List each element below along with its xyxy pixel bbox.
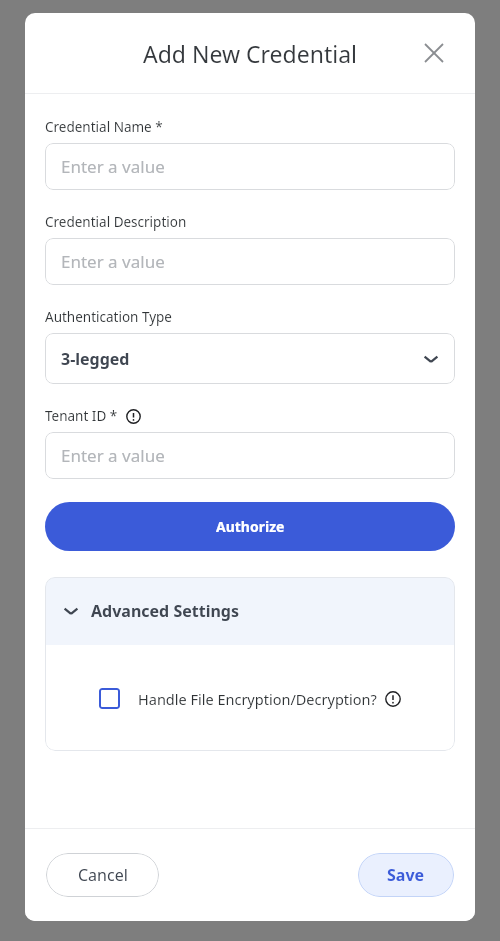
staticText: Credential Description [45, 213, 187, 231]
staticText: Enter a value [61, 250, 165, 273]
button[interactable]: Close [417, 36, 451, 70]
staticText: Add New Credential [143, 38, 357, 69]
staticText: Enter a value [61, 155, 165, 178]
button[interactable]: Enter a value [45, 432, 455, 479]
button[interactable]: Save [358, 853, 454, 897]
button[interactable]: More information [384, 690, 402, 708]
staticText: 3-legged [61, 348, 130, 370]
button[interactable]: More information [124, 407, 142, 425]
staticText: Credential Name * [45, 118, 163, 136]
button[interactable]: Handle File Encryption/Decryption? [95, 684, 406, 713]
staticText: Advanced Settings [91, 600, 239, 622]
staticText: Authentication Type [45, 308, 172, 326]
button[interactable]: 3-legged [45, 333, 455, 384]
staticText: Save [387, 864, 425, 886]
staticText: Handle File Encryption/Decryption? [138, 689, 377, 709]
staticText: Authorize [216, 517, 285, 536]
button[interactable]: Advanced Settings [45, 577, 455, 645]
staticText: Cancel [78, 864, 128, 886]
button[interactable]: Enter a value [45, 143, 455, 190]
button[interactable]: Authorize [45, 502, 455, 551]
staticText: Tenant ID * [45, 407, 118, 425]
button[interactable]: Cancel [46, 853, 159, 897]
button[interactable]: Enter a value [45, 238, 455, 285]
staticText: Enter a value [61, 444, 165, 467]
